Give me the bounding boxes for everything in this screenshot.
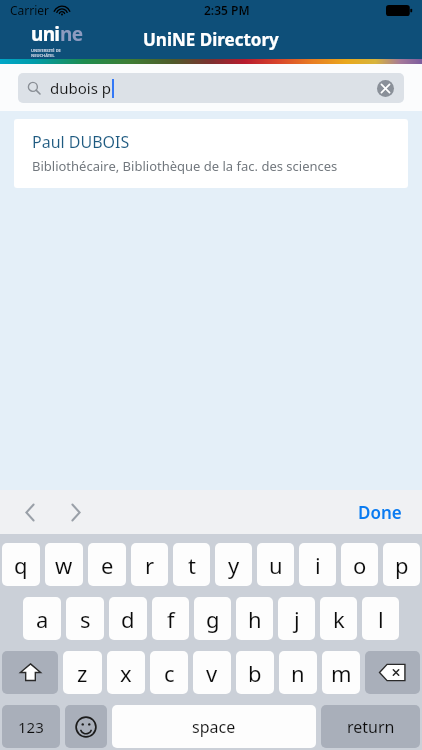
button[interactable]: dubois p	[18, 73, 404, 103]
staticText: m	[331, 658, 352, 688]
button[interactable]: Shift	[2, 651, 58, 694]
staticText: Done	[358, 501, 402, 524]
button[interactable]: g	[194, 597, 231, 640]
button[interactable]: l	[362, 597, 399, 640]
button[interactable]: s	[66, 597, 104, 640]
staticText: s	[80, 604, 91, 634]
staticText: i	[315, 550, 321, 580]
staticText: Bibliothécaire, Bibliothèque de la fac. …	[32, 157, 338, 175]
staticText: p	[395, 550, 409, 580]
button[interactable]: z	[63, 651, 102, 694]
staticText: v	[206, 658, 218, 688]
button[interactable]: p	[383, 543, 420, 586]
staticText: e	[101, 550, 114, 580]
staticText: a	[36, 604, 49, 634]
staticText: UniNE Directory	[143, 28, 279, 51]
button[interactable]: o	[341, 543, 378, 586]
staticText: ne	[60, 21, 83, 47]
staticText: Carrier	[10, 2, 50, 18]
button[interactable]: m	[322, 651, 360, 694]
button[interactable]: e	[88, 543, 126, 586]
button[interactable]: n	[279, 651, 317, 694]
button[interactable]: Next field	[56, 492, 96, 532]
button[interactable]: Emoji keyboard	[65, 705, 107, 748]
staticText: return	[347, 716, 395, 738]
button[interactable]: r	[131, 543, 168, 586]
staticText: space	[192, 716, 236, 738]
button[interactable]: a	[23, 597, 61, 640]
button[interactable]: h	[236, 597, 273, 640]
staticText: z	[77, 658, 88, 688]
button[interactable]: b	[236, 651, 274, 694]
staticText: f	[167, 604, 175, 634]
staticText: y	[228, 550, 240, 580]
staticText: o	[353, 550, 367, 580]
button[interactable]: x	[107, 651, 145, 694]
button[interactable]: f	[152, 597, 189, 640]
staticText: NEUCHÂTEL	[31, 53, 55, 58]
staticText: x	[120, 658, 132, 688]
button[interactable]: return	[321, 705, 420, 748]
staticText: k	[333, 604, 345, 634]
button[interactable]: q	[2, 543, 40, 586]
staticText: r	[145, 550, 155, 580]
staticText: dubois p	[50, 78, 111, 98]
staticText: uni	[31, 21, 60, 47]
staticText: t	[188, 550, 196, 580]
button[interactable]: Paul DUBOIS	[14, 119, 408, 188]
staticText: 123	[18, 717, 44, 737]
button[interactable]: space	[112, 705, 316, 748]
staticText: UNIVERSITÉ DE	[31, 48, 61, 53]
staticText: n	[291, 658, 305, 688]
staticText: c	[164, 658, 175, 688]
staticText: h	[248, 604, 262, 634]
button[interactable]: i	[299, 543, 336, 586]
staticText: l	[378, 604, 384, 634]
button[interactable]: k	[320, 597, 357, 640]
button[interactable]: c	[150, 651, 188, 694]
staticText: Paul DUBOIS	[32, 131, 130, 153]
button[interactable]: Done	[352, 492, 408, 533]
button[interactable]: 123	[2, 705, 60, 748]
staticText: d	[121, 604, 135, 634]
staticText: b	[248, 658, 262, 688]
staticText: g	[206, 604, 220, 634]
staticText: q	[14, 550, 28, 580]
button[interactable]: t	[173, 543, 210, 586]
button[interactable]: j	[278, 597, 315, 640]
staticText: j	[294, 604, 300, 634]
button[interactable]: v	[193, 651, 231, 694]
button[interactable]: w	[45, 543, 83, 586]
staticText: w	[55, 550, 73, 580]
button[interactable]: Backspace	[365, 651, 420, 694]
staticText: u	[269, 550, 283, 580]
button[interactable]: u	[257, 543, 294, 586]
button[interactable]: Clear search	[375, 78, 395, 98]
button[interactable]: d	[109, 597, 147, 640]
button[interactable]: Previous field	[10, 492, 50, 532]
staticText: 2:35 PM	[204, 2, 250, 18]
button[interactable]: y	[215, 543, 252, 586]
